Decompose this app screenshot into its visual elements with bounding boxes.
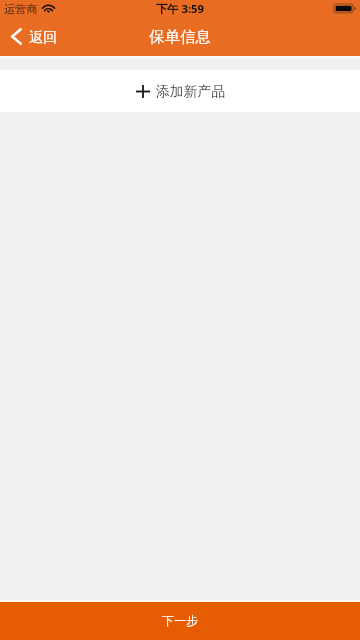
- button[interactable]: Back: [0, 20, 68, 53]
- staticText: 下一步: [162, 613, 198, 628]
- staticText: 返回: [29, 28, 58, 46]
- button[interactable]: 添加新产品: [0, 70, 360, 112]
- staticText: 保单信息: [0, 27, 360, 46]
- button[interactable]: 下一步: [0, 602, 360, 640]
- staticText: 运营商: [4, 2, 38, 16]
- other: Back: [11, 28, 22, 45]
- staticText: 添加新产品: [156, 83, 225, 100]
- staticText: 下午 3:59: [0, 1, 360, 16]
